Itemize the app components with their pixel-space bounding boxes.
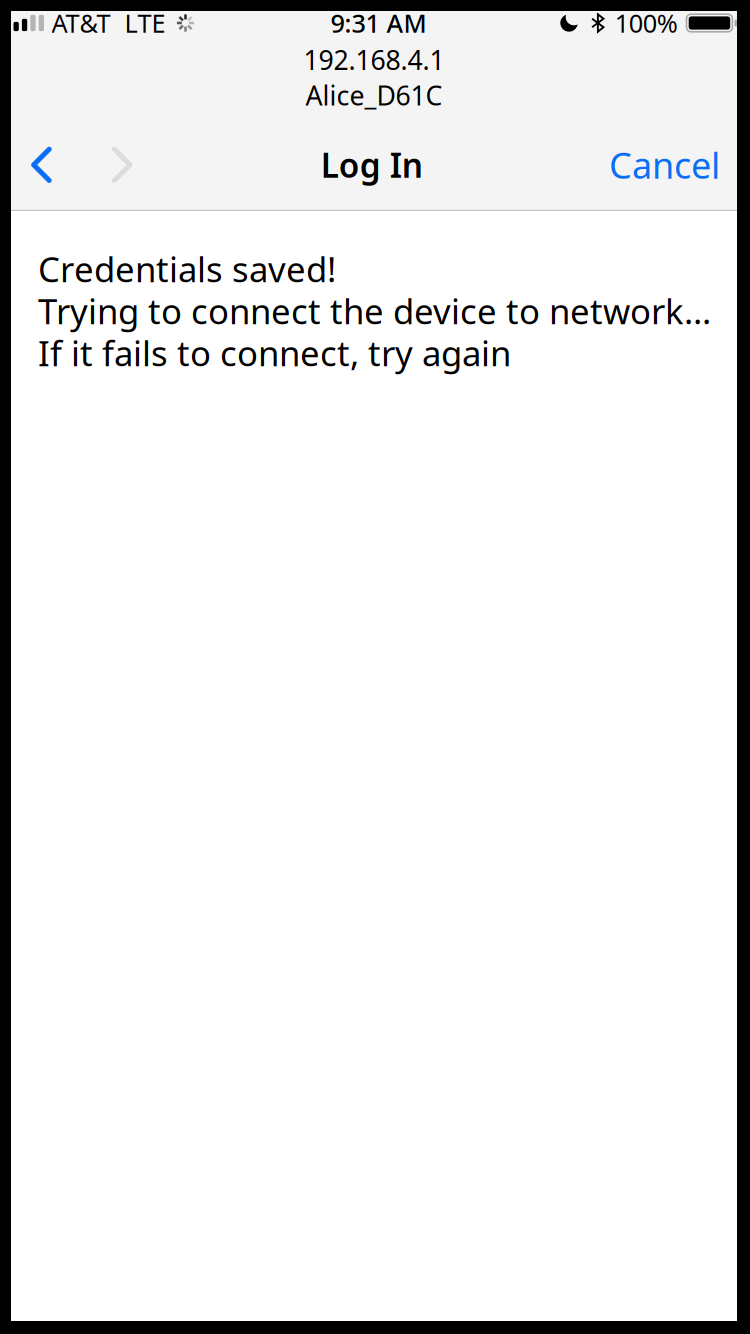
staticText: 100% — [615, 6, 678, 40]
staticText: Log In — [321, 143, 423, 187]
staticText: 9:31 AM — [330, 6, 426, 40]
staticText: AT&T — [51, 6, 110, 40]
button[interactable]: Cancel — [591, 125, 737, 205]
staticText: 192.168.4.1 — [303, 42, 444, 77]
staticText: If it fails to connect, try again — [38, 330, 511, 376]
staticText: Trying to connect the device to network.… — [38, 288, 711, 334]
staticText: Cancel — [609, 141, 720, 189]
button[interactable]: Back — [11, 125, 74, 205]
staticText: Credentials saved! — [38, 246, 336, 292]
staticText: LTE — [124, 6, 165, 40]
button[interactable]: Forward — [74, 125, 153, 205]
staticText: Alice_D61C — [305, 77, 442, 113]
